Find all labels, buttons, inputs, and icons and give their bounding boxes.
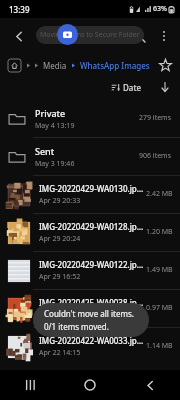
button[interactable]: IMG-20220429-WA0122.jpeg <box>0 252 180 289</box>
staticText: Private <box>35 107 66 119</box>
button[interactable]: Media <box>43 60 67 71</box>
button[interactable]: Add to favourites <box>157 57 173 73</box>
button[interactable]: IMG-20220429-WA0128.jpeg <box>0 214 180 251</box>
staticText: 1.14 MB <box>146 341 173 351</box>
staticText: 63% <box>153 4 167 14</box>
button[interactable]: Search <box>126 23 152 49</box>
staticText: 13:39 <box>9 4 30 15</box>
staticText: IMG-20220429-WA0128.jpeg <box>39 221 146 232</box>
staticText: IMG-20220429-WA0130.jpeg <box>39 183 146 194</box>
staticText: Date <box>123 82 142 93</box>
staticText: IMG-20220422-WA0033.jpeg <box>39 335 146 346</box>
button[interactable]: Home <box>7 58 22 73</box>
staticText: Apr 29 20:33 <box>39 196 81 206</box>
staticText: 1.49 MB <box>146 265 173 275</box>
button[interactable]: Back <box>134 370 166 400</box>
staticText: 906 items <box>139 151 172 161</box>
staticText: Apr 29 16:52 <box>39 272 81 282</box>
button[interactable]: IMG-20220425-WA0038.jpeg <box>0 290 180 327</box>
button[interactable]: Back <box>6 23 32 49</box>
staticText: 0/1 items moved. <box>44 321 109 332</box>
button[interactable]: Date <box>109 82 144 93</box>
staticText: IMG-20220425-WA0038.jpeg <box>39 297 146 308</box>
staticText: Moving items to Secure Folder <box>40 30 140 40</box>
staticText: Apr 29 20:24 <box>39 234 81 244</box>
staticText: 279 items <box>139 113 172 123</box>
button[interactable]: IMG-20220422-WA0033.jpeg <box>0 328 180 365</box>
staticText: May 4 13:19 <box>35 121 75 131</box>
staticText: Sent <box>35 145 55 157</box>
button[interactable]: Moving items to Secure Folder <box>36 26 144 44</box>
button[interactable]: Sent <box>0 138 180 175</box>
staticText: Apr 22 14:15 <box>39 348 81 358</box>
staticText: May 3 19:46 <box>35 159 75 169</box>
button[interactable]: Sort direction <box>158 80 172 94</box>
staticText: 2.42 MB <box>146 189 173 199</box>
staticText: Apr 25 11:02 <box>39 310 81 320</box>
button[interactable]: More options <box>152 24 176 48</box>
button[interactable]: Home <box>74 370 106 400</box>
staticText: 1.20 MB <box>146 227 173 237</box>
button[interactable]: IMG-20220429-WA0130.jpeg <box>0 176 180 213</box>
button[interactable]: Recent apps <box>14 370 46 400</box>
staticText: 0.97 MB <box>146 303 173 313</box>
staticText: IMG-20220429-WA0122.jpeg <box>39 259 146 270</box>
button[interactable]: WhatsApp Images <box>80 60 150 71</box>
staticText: Couldn't move all items. <box>44 308 134 319</box>
button[interactable]: Private <box>0 100 180 137</box>
